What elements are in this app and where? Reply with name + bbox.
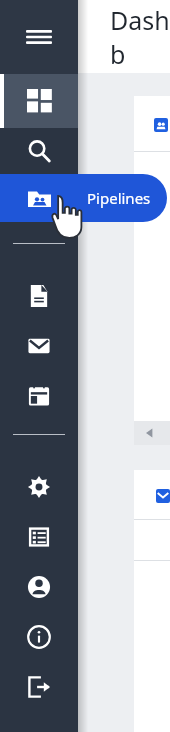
button[interactable]: Dashboard bbox=[0, 74, 78, 128]
button[interactable]: Lists bbox=[0, 518, 78, 556]
button[interactable]: Calendar bbox=[0, 377, 78, 415]
button[interactable]: Documents bbox=[0, 277, 78, 315]
button[interactable]: Scroll left bbox=[143, 427, 155, 439]
button[interactable]: Pipelines bbox=[0, 174, 167, 222]
button[interactable]: Mail bbox=[0, 327, 78, 365]
button[interactable]: Info bbox=[0, 618, 78, 656]
button[interactable]: Team bbox=[134, 96, 170, 421]
other: Messages bbox=[156, 489, 170, 503]
button[interactable]: Log out bbox=[0, 668, 78, 706]
other: Team bbox=[154, 118, 168, 132]
button[interactable]: Menu bbox=[0, 0, 78, 74]
button[interactable]: Search bbox=[0, 128, 78, 174]
button[interactable]: Settings bbox=[0, 468, 78, 506]
staticText: Dashb bbox=[110, 3, 170, 71]
staticText: Pipelines bbox=[87, 188, 151, 208]
button[interactable]: Messages bbox=[134, 470, 170, 732]
button[interactable]: Account bbox=[0, 568, 78, 606]
